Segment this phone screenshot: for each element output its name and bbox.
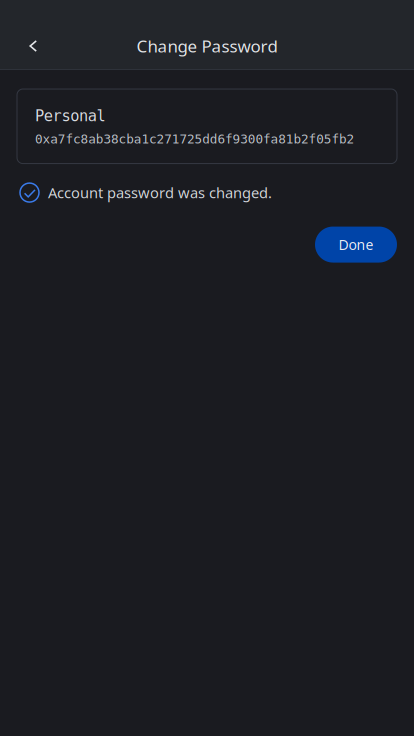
staticText: Change Password: [136, 34, 277, 58]
staticText: Done: [338, 235, 373, 254]
button[interactable]: Done: [315, 227, 397, 263]
staticText: 0xa7fc8ab38cba1c271725dd6f9300fa81b2f05f…: [35, 132, 355, 146]
staticText: Personal: [35, 107, 106, 125]
staticText: Account password was changed.: [48, 183, 272, 203]
button[interactable]: Back: [11, 24, 55, 68]
